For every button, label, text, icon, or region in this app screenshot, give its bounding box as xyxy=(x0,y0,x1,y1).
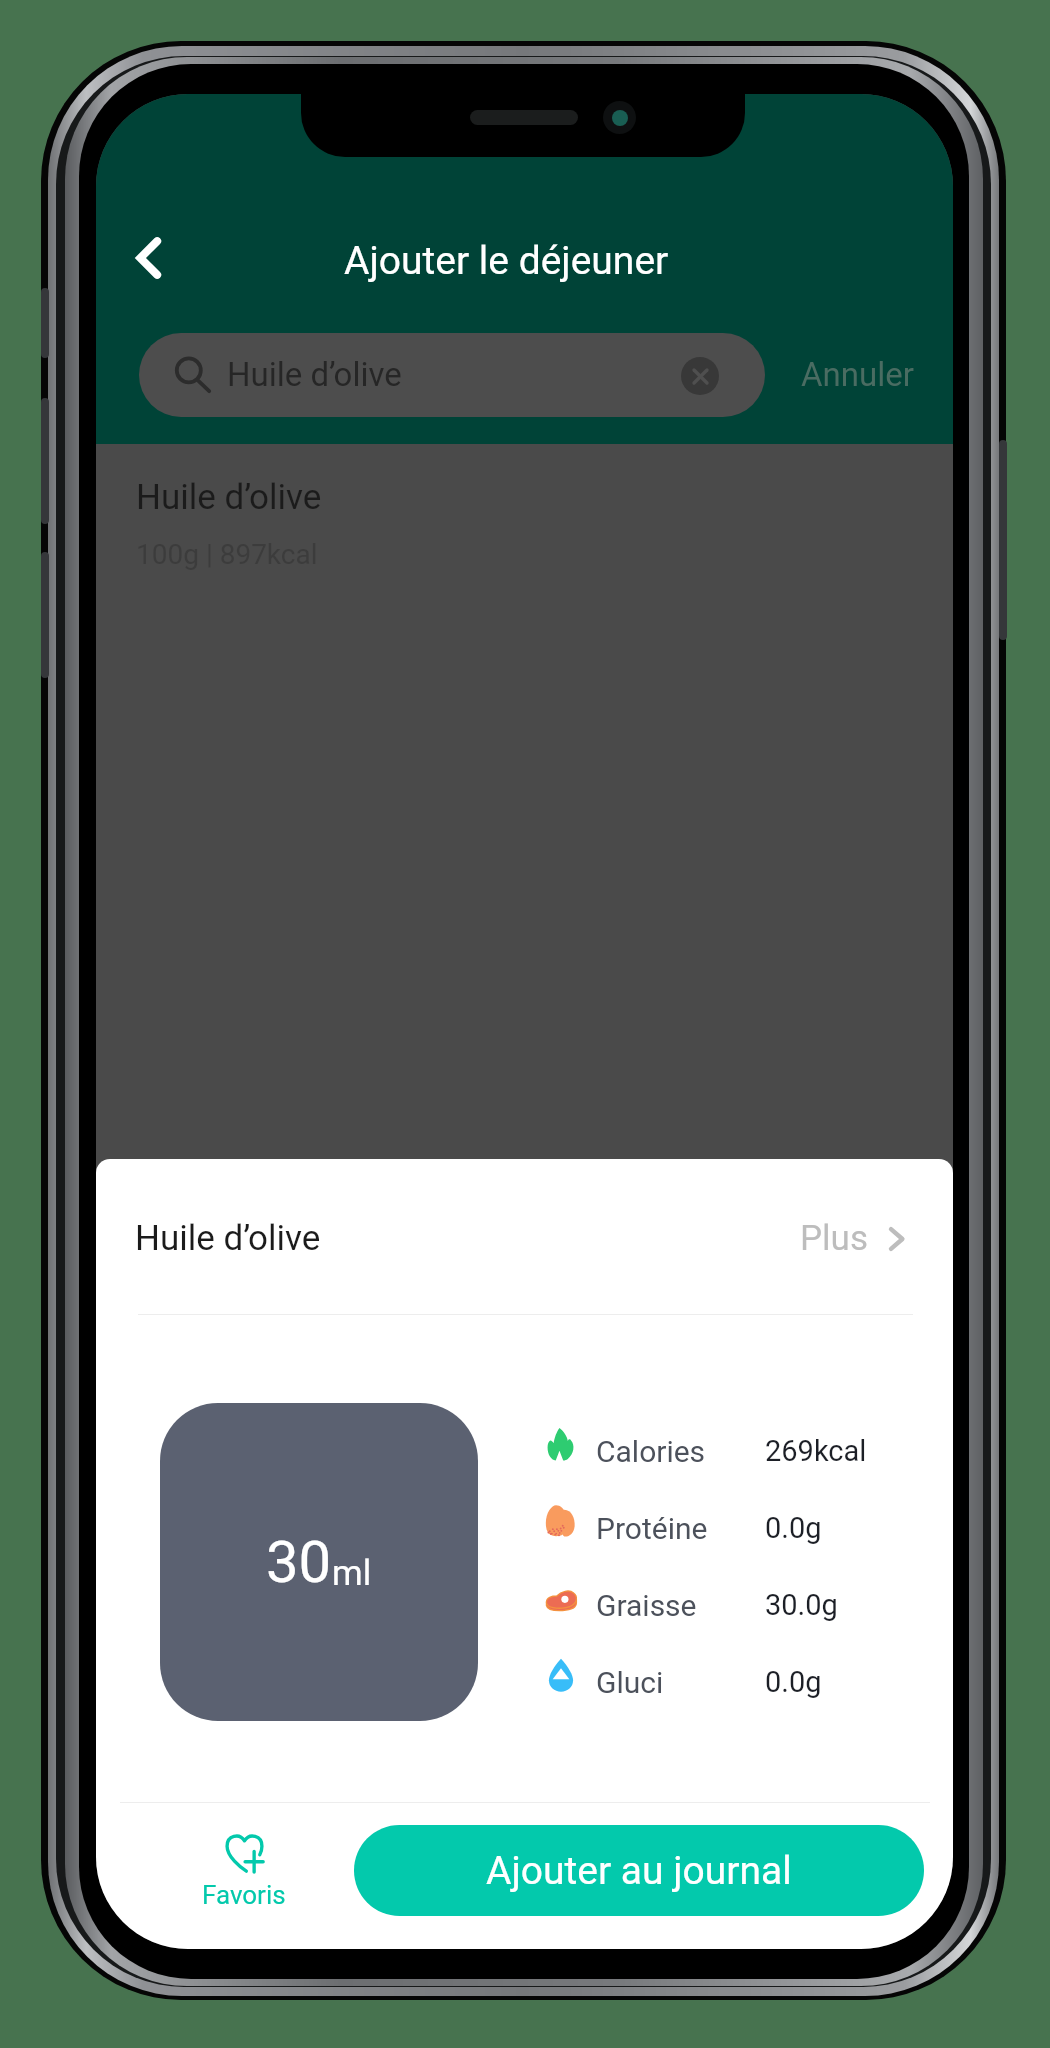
button[interactable]: 30 xyxy=(160,1403,478,1721)
button[interactable]: Back xyxy=(120,228,180,288)
staticText: Huile d’olive xyxy=(135,1218,321,1259)
staticText: 269kcal xyxy=(765,1434,867,1468)
staticText: Ajouter au journal xyxy=(486,1848,792,1894)
button[interactable]: Favoris xyxy=(193,1832,295,1910)
staticText: 30.0g xyxy=(765,1588,838,1622)
staticText: Favoris xyxy=(202,1880,286,1910)
button[interactable]: Huile d’olive xyxy=(96,455,953,585)
staticText: 0.0g xyxy=(765,1665,822,1699)
staticText: Huile d’olive xyxy=(227,355,402,394)
staticText: 0.0g xyxy=(765,1511,822,1545)
staticText: Gluci xyxy=(596,1665,664,1700)
staticText: Plus xyxy=(800,1218,868,1259)
button[interactable]: Huile d’olive xyxy=(139,333,765,417)
button[interactable]: Ajouter au journal xyxy=(354,1825,924,1916)
staticText: Protéine xyxy=(596,1511,708,1546)
staticText: 30 xyxy=(266,1528,332,1596)
staticText: ml xyxy=(332,1553,372,1594)
staticText: 100g | 897kcal xyxy=(136,538,318,571)
staticText: Graisse xyxy=(596,1588,697,1623)
staticText: Calories xyxy=(596,1434,706,1469)
button[interactable]: Plus xyxy=(800,1218,898,1259)
button[interactable]: Clear search xyxy=(681,357,719,395)
staticText: Huile d’olive xyxy=(136,477,322,518)
button[interactable]: Annuler xyxy=(801,355,914,394)
staticText: Ajouter le déjeuner xyxy=(344,238,669,284)
